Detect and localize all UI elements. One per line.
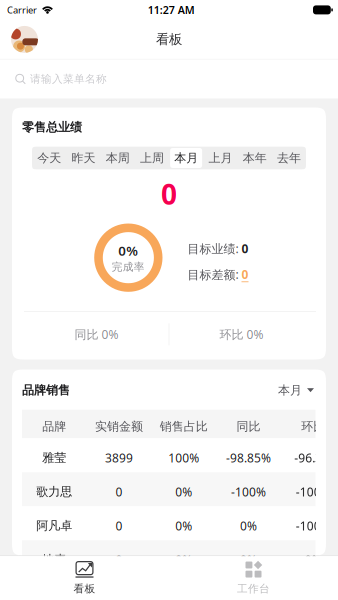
staticText: 请输入菜单名称 — [30, 72, 107, 85]
staticText: 阿凡卓 — [36, 518, 72, 533]
staticText: 上月 — [208, 151, 232, 165]
staticText: 0% — [175, 518, 192, 534]
staticText: -100% — [231, 484, 266, 500]
staticText: 看板 — [73, 582, 95, 595]
staticText: 歌力思 — [36, 484, 72, 499]
staticText: 0 — [241, 266, 248, 282]
staticText: 0% — [240, 518, 257, 534]
button[interactable]: 昨天 — [66, 146, 100, 169]
staticText: -96.3% — [294, 450, 332, 466]
staticText: 今天 — [37, 151, 61, 165]
staticText: 同比 — [236, 419, 260, 434]
staticText: Carrier — [7, 4, 37, 16]
staticText: 目标差额: — [187, 266, 241, 282]
button[interactable]: Profile — [11, 26, 38, 53]
staticText: 工作台 — [237, 582, 270, 595]
staticText: 完成率 — [112, 260, 145, 274]
button[interactable]: 本月 — [169, 146, 203, 169]
staticText: 零售总业绩 — [22, 120, 82, 135]
staticText: 0% — [240, 552, 257, 568]
staticText: 同比 0% — [75, 326, 119, 342]
button[interactable]: 看板 — [0, 561, 169, 595]
staticText: -98.85% — [226, 450, 271, 466]
staticText: 本年 — [243, 151, 267, 165]
staticText: 销售占比 — [160, 419, 208, 434]
staticText: 0% — [118, 242, 138, 259]
staticText: 昨天 — [71, 151, 95, 165]
staticText: -100% — [296, 518, 331, 534]
button[interactable]: 请输入菜单名称 — [0, 59, 338, 98]
staticText: 0 — [116, 484, 123, 500]
staticText: 去年 — [277, 151, 301, 165]
staticText: 实销金额 — [95, 419, 143, 434]
staticText: 0% — [175, 552, 192, 568]
staticText: 100% — [168, 450, 199, 466]
staticText: -100% — [296, 484, 331, 500]
staticText: 雅莹 — [42, 450, 66, 465]
staticText: 本周 — [106, 151, 130, 165]
staticText: 本月 — [278, 383, 302, 397]
button[interactable]: 工作台 — [169, 561, 338, 595]
button[interactable]: 本年 — [237, 146, 272, 169]
button[interactable]: 上周 — [135, 146, 169, 169]
staticText: 3899 — [105, 450, 133, 466]
staticText: 上周 — [140, 151, 164, 165]
button[interactable]: 去年 — [272, 146, 306, 169]
staticText: 环比 — [301, 419, 325, 434]
staticText: 0 — [241, 240, 248, 256]
staticText: 品牌销售 — [22, 383, 70, 397]
staticText: 品牌 — [42, 419, 66, 434]
button[interactable]: 本月 — [278, 383, 314, 397]
staticText: 本月 — [174, 151, 198, 165]
staticText: 11:27 AM — [148, 3, 195, 17]
staticText: 目标业绩: — [187, 240, 241, 256]
staticText: 0 — [161, 175, 177, 212]
staticText: 地素 — [42, 552, 66, 567]
button[interactable]: 本周 — [100, 146, 135, 169]
staticText: 0 — [116, 552, 123, 568]
button[interactable]: 上月 — [203, 146, 237, 169]
staticText: 0% — [175, 484, 192, 500]
staticText: 看板 — [156, 31, 182, 48]
staticText: 0 — [116, 518, 123, 534]
button[interactable]: 今天 — [32, 146, 66, 169]
staticText: 0% — [305, 552, 322, 568]
staticText: 环比 0% — [219, 326, 263, 342]
